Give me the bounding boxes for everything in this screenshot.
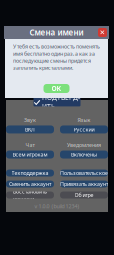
staticText: Уведомления — [67, 141, 101, 149]
staticText: Чат — [25, 141, 34, 149]
staticText: Привязать аккаунт — [60, 180, 108, 188]
button[interactable]: Привязать аккаунт — [60, 180, 108, 187]
staticText: ПОДТВЕРДИТЬ — [42, 93, 80, 111]
button[interactable]: Техподдержка — [6, 169, 54, 176]
staticText: v 1.0.0 (build 1234) — [34, 202, 79, 210]
button[interactable]: Close — [98, 28, 107, 37]
staticText: Включены — [71, 151, 97, 158]
staticText: Об игре — [74, 191, 93, 199]
staticText: Язык — [77, 116, 90, 123]
staticText: Звук — [24, 116, 36, 123]
staticText: Восстановить покупки — [13, 188, 47, 202]
staticText: У тебя есть возможность поменять имя бес… — [13, 43, 100, 71]
staticText: Русский — [73, 126, 94, 133]
button[interactable]: Пользовательское — [60, 169, 108, 176]
button[interactable]: Сменить аккаунт — [6, 180, 54, 187]
staticText: Всем игрокам — [12, 151, 47, 158]
button[interactable]: Всем игрокам — [6, 150, 54, 158]
button[interactable]: Включены — [60, 150, 108, 158]
staticText: Пользовательское — [60, 169, 108, 177]
staticText: ВКЛ — [25, 126, 35, 133]
button[interactable]: ПОДТВЕРДИТЬ — [33, 97, 80, 106]
staticText: Сменить аккаунт — [9, 180, 51, 188]
button[interactable]: ОК — [43, 84, 69, 93]
staticText: ОК — [51, 84, 61, 93]
button[interactable]: Русский — [60, 125, 108, 133]
staticText: Смена имени — [29, 27, 83, 38]
button[interactable]: Восстановить покупки — [6, 191, 54, 198]
button[interactable]: Об игре — [60, 191, 108, 198]
staticText: Техподдержка — [11, 169, 48, 177]
staticText: ✕ — [99, 29, 105, 36]
button[interactable]: ВКЛ — [6, 125, 54, 133]
